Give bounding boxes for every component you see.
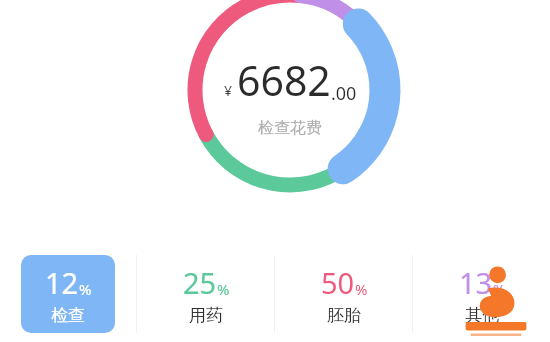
button[interactable]: 25 — [159, 255, 253, 333]
staticText: ¥ — [224, 81, 233, 100]
staticText: 胚胎 — [327, 305, 361, 326]
other: 金贝 watermark — [456, 258, 544, 338]
staticText: 6682 — [237, 52, 331, 108]
staticText: 25 — [183, 263, 217, 302]
staticText: 50 — [321, 263, 355, 302]
staticText: % — [493, 279, 506, 299]
staticText: % — [217, 279, 230, 299]
staticText: % — [355, 279, 368, 299]
staticText: 其他 — [465, 305, 499, 326]
staticText: 用药 — [189, 305, 223, 326]
staticText: 12 — [45, 263, 79, 302]
staticText: 检查 — [51, 305, 85, 326]
staticText: % — [79, 279, 92, 299]
button[interactable]: 50 — [297, 255, 391, 333]
button[interactable]: 12 — [21, 255, 115, 333]
staticText: 检查花费 — [258, 118, 322, 138]
button[interactable]: 13 — [435, 255, 529, 333]
staticText: 13 — [459, 263, 493, 302]
staticText: .00 — [331, 81, 357, 106]
